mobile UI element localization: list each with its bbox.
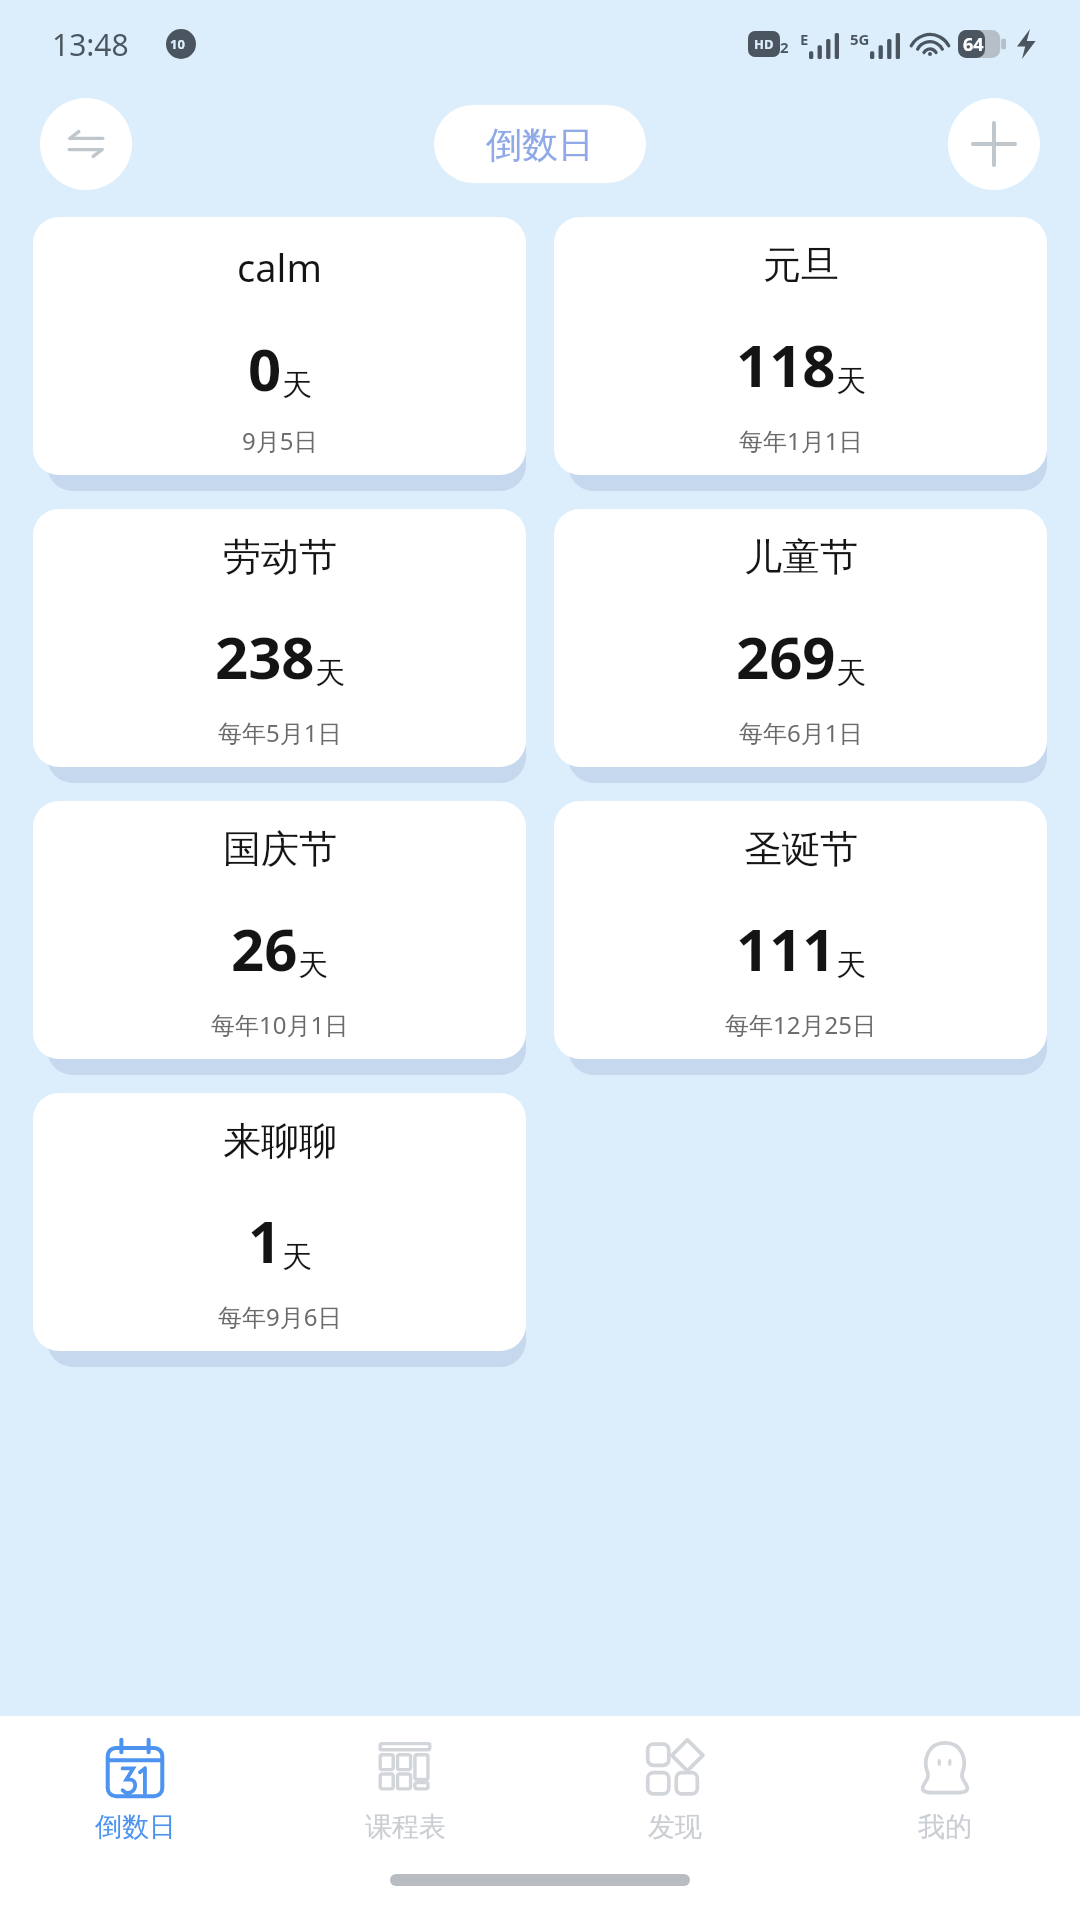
button[interactable]: 国庆节 bbox=[33, 801, 526, 1059]
staticText: 天 bbox=[836, 654, 866, 692]
button[interactable]: 来聊聊 bbox=[33, 1093, 526, 1351]
staticText: 每年12月25日 bbox=[725, 1008, 876, 1041]
staticText: 111 bbox=[736, 909, 836, 988]
staticText: 圣诞节 bbox=[744, 825, 858, 873]
staticText: 儿童节 bbox=[744, 533, 858, 581]
button[interactable]: 课程表 bbox=[270, 1716, 540, 1866]
staticText: 9月5日 bbox=[242, 424, 318, 457]
button[interactable]: 劳动节 bbox=[33, 509, 526, 767]
staticText: 天 bbox=[315, 654, 345, 692]
staticText: 发现 bbox=[648, 1810, 702, 1844]
staticText: 天 bbox=[282, 366, 312, 404]
staticText: 倒数日 bbox=[95, 1810, 176, 1844]
staticText: 倒数日 bbox=[486, 122, 594, 167]
staticText: 元旦 bbox=[763, 241, 839, 289]
staticText: 2 bbox=[780, 37, 789, 57]
staticText: 每年10月1日 bbox=[211, 1008, 349, 1041]
staticText: HD bbox=[754, 35, 774, 53]
staticText: 来聊聊 bbox=[223, 1117, 337, 1165]
button[interactable]: 排序 bbox=[40, 98, 132, 190]
staticText: 13:48 bbox=[52, 24, 129, 65]
button[interactable]: 元旦 bbox=[554, 217, 1047, 475]
button[interactable]: 倒数日 bbox=[434, 105, 646, 183]
staticText: 1 bbox=[248, 1201, 282, 1280]
staticText: 国庆节 bbox=[223, 825, 337, 873]
button[interactable]: 倒数日 bbox=[0, 1716, 270, 1866]
staticText: 238 bbox=[215, 617, 315, 696]
staticText: calm bbox=[237, 241, 322, 293]
staticText: 10 bbox=[170, 35, 185, 53]
staticText: 26 bbox=[231, 909, 298, 988]
button[interactable]: 儿童节 bbox=[554, 509, 1047, 767]
button[interactable]: 添加 bbox=[948, 98, 1040, 190]
staticText: 天 bbox=[282, 1238, 312, 1276]
staticText: 5G bbox=[850, 29, 870, 49]
button[interactable]: calm bbox=[33, 217, 526, 475]
button[interactable]: 发现 bbox=[540, 1716, 810, 1866]
staticText: 269 bbox=[736, 617, 836, 696]
staticText: 64 bbox=[963, 32, 984, 57]
staticText: 每年1月1日 bbox=[739, 424, 863, 457]
button[interactable]: 圣诞节 bbox=[554, 801, 1047, 1059]
staticText: 劳动节 bbox=[223, 533, 337, 581]
button[interactable]: 我的 bbox=[810, 1716, 1080, 1866]
staticText: 我的 bbox=[918, 1810, 972, 1844]
staticText: E bbox=[800, 29, 809, 49]
staticText: 每年9月6日 bbox=[218, 1300, 342, 1333]
staticText: 0 bbox=[248, 329, 282, 408]
staticText: 118 bbox=[736, 325, 836, 404]
staticText: 每年6月1日 bbox=[739, 716, 863, 749]
staticText: 天 bbox=[298, 946, 328, 984]
staticText: 课程表 bbox=[365, 1810, 446, 1844]
staticText: 天 bbox=[836, 362, 866, 400]
staticText: 每年5月1日 bbox=[218, 716, 342, 749]
staticText: 天 bbox=[836, 946, 866, 984]
